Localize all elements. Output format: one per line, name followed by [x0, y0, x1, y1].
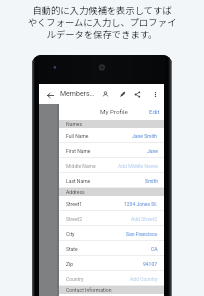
staticText: Address [66, 189, 85, 195]
staticText: Jane Smith [132, 133, 158, 139]
staticText: Smith [145, 178, 158, 184]
staticText: 自動的に入力候補を表示してすば やくフォームに入力し、プロファイ ルデータを保存… [0, 3, 204, 40]
button[interactable]: Full Name [59, 128, 164, 143]
button[interactable]: Account [98, 87, 112, 101]
staticText: City [66, 231, 75, 237]
button[interactable]: Edit [115, 87, 129, 101]
button[interactable]: Middle Name [59, 158, 164, 173]
staticText: Add Street2 [131, 216, 158, 222]
button[interactable]: Street2 [59, 211, 164, 226]
staticText: San Francisco [126, 231, 158, 237]
button[interactable]: Back [43, 88, 57, 102]
staticText: Zip [66, 261, 74, 267]
staticText: Edit [149, 108, 160, 115]
staticText: Middle Name [66, 163, 96, 169]
staticText: Add Middle Name [118, 163, 158, 169]
staticText: 1234 Jones St. [124, 201, 158, 207]
button[interactable]: State [59, 241, 164, 256]
button[interactable]: City [59, 226, 164, 241]
staticText: 94107 [143, 261, 158, 267]
staticText: Country [66, 276, 84, 282]
staticText: Names [66, 121, 83, 127]
button[interactable]: Street1 [59, 196, 164, 211]
button[interactable]: Zip [59, 256, 164, 271]
staticText: Street2 [66, 216, 83, 222]
staticText: Contact Information [66, 287, 112, 293]
staticText: Street1 [66, 201, 83, 207]
staticText: Members… [60, 90, 95, 98]
button[interactable]: Country [59, 271, 164, 286]
button[interactable]: Last Name [59, 173, 164, 188]
button[interactable]: Edit [149, 108, 160, 115]
button[interactable]: First Name [59, 143, 164, 158]
staticText: Full Name [66, 133, 89, 139]
staticText: My Profile [100, 108, 128, 115]
staticText: Last Name [66, 178, 91, 184]
staticText: Add Country [130, 276, 158, 282]
button[interactable]: Share [130, 87, 144, 101]
staticText: CA [151, 246, 158, 252]
button[interactable]: More options [148, 87, 162, 101]
staticText: First Name [66, 148, 91, 154]
staticText: Jane [147, 148, 158, 154]
staticText: State [66, 246, 78, 252]
